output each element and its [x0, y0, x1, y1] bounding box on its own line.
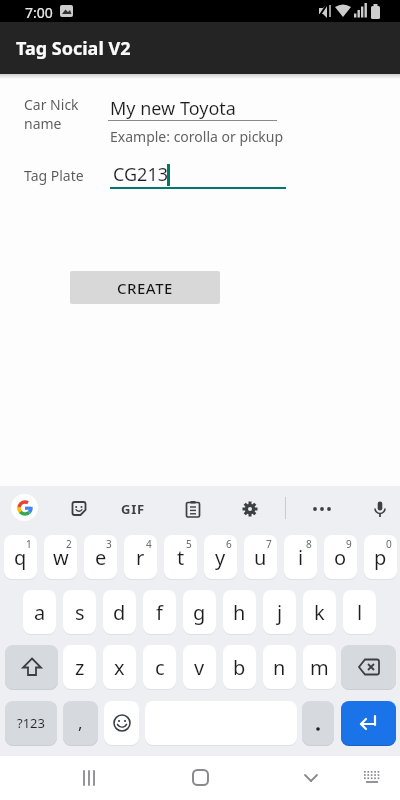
- button[interactable]: [302, 701, 334, 745]
- staticText: u: [254, 544, 267, 571]
- staticText: k: [314, 599, 325, 626]
- button[interactable]: e: [84, 535, 117, 579]
- button[interactable]: c: [143, 645, 176, 689]
- staticText: c: [155, 654, 165, 681]
- staticText: h: [233, 599, 246, 626]
- button[interactable]: [5, 645, 58, 689]
- staticText: CREATE: [117, 278, 173, 298]
- button[interactable]: r: [124, 535, 157, 579]
- button[interactable]: m: [303, 645, 336, 689]
- staticText: 9: [346, 537, 352, 551]
- staticText: b: [233, 654, 246, 681]
- button[interactable]: ?123: [5, 701, 57, 745]
- staticText: v: [194, 654, 205, 681]
- button[interactable]: [341, 701, 396, 745]
- button[interactable]: n: [263, 645, 296, 689]
- button[interactable]: [235, 494, 265, 524]
- button[interactable]: ,: [63, 701, 98, 745]
- staticText: a: [34, 599, 46, 626]
- staticText: y: [215, 544, 226, 571]
- staticText: Example: corolla or pickup: [110, 127, 284, 146]
- staticText: r: [136, 544, 145, 571]
- staticText: CG213: [113, 162, 169, 187]
- button[interactable]: [307, 494, 337, 524]
- staticText: 0: [386, 537, 392, 551]
- button[interactable]: q: [4, 535, 37, 579]
- staticText: 5: [186, 537, 192, 551]
- staticText: Tag Social V2: [16, 36, 131, 61]
- button[interactable]: [356, 763, 386, 793]
- button[interactable]: [341, 645, 396, 689]
- staticText: 3: [106, 537, 112, 551]
- staticText: g: [193, 599, 206, 626]
- button[interactable]: s: [63, 590, 96, 634]
- staticText: ?123: [17, 714, 45, 732]
- button[interactable]: a: [23, 590, 56, 634]
- button[interactable]: [178, 494, 208, 524]
- staticText: e: [95, 544, 107, 571]
- button[interactable]: x: [103, 645, 136, 689]
- button[interactable]: [365, 494, 395, 524]
- button[interactable]: [296, 763, 326, 793]
- staticText: i: [298, 544, 304, 571]
- staticText: q: [14, 544, 27, 571]
- staticText: m: [310, 654, 329, 681]
- staticText: z: [75, 654, 85, 681]
- staticText: 1: [26, 537, 32, 551]
- staticText: Car Nick name: [24, 95, 79, 133]
- button[interactable]: g: [183, 590, 216, 634]
- staticText: Tag Plate: [24, 166, 84, 185]
- staticText: x: [114, 654, 125, 681]
- button[interactable]: CREATE: [70, 271, 220, 304]
- button[interactable]: [104, 701, 139, 745]
- button[interactable]: y: [204, 535, 237, 579]
- button[interactable]: [185, 763, 215, 793]
- button[interactable]: u: [244, 535, 277, 579]
- staticText: GIF: [121, 500, 146, 518]
- button[interactable]: z: [63, 645, 96, 689]
- button[interactable]: f: [143, 590, 176, 634]
- button[interactable]: [64, 494, 94, 524]
- staticText: p: [374, 544, 387, 571]
- button[interactable]: [74, 763, 104, 793]
- button[interactable]: p: [364, 535, 397, 579]
- staticText: j: [277, 599, 283, 626]
- button[interactable]: t: [164, 535, 197, 579]
- staticText: 6: [226, 537, 232, 551]
- staticText: f: [156, 599, 163, 626]
- button[interactable]: l: [343, 590, 376, 634]
- staticText: l: [357, 599, 363, 626]
- button[interactable]: GIF: [118, 494, 148, 524]
- staticText: My new Toyota: [110, 96, 236, 121]
- button[interactable]: k: [303, 590, 336, 634]
- button[interactable]: b: [223, 645, 256, 689]
- button[interactable]: v: [183, 645, 216, 689]
- staticText: o: [334, 544, 347, 571]
- button[interactable]: o: [324, 535, 357, 579]
- staticText: n: [273, 654, 286, 681]
- staticText: 7: [266, 537, 272, 551]
- staticText: d: [113, 599, 126, 626]
- button[interactable]: h: [223, 590, 256, 634]
- staticText: s: [75, 599, 85, 626]
- staticText: 2: [66, 537, 72, 551]
- staticText: 7:00: [25, 3, 53, 22]
- staticText: w: [53, 544, 69, 571]
- staticText: ,: [78, 711, 83, 734]
- button[interactable]: d: [103, 590, 136, 634]
- button[interactable]: j: [263, 590, 296, 634]
- staticText: t: [177, 544, 185, 571]
- button[interactable]: w: [44, 535, 77, 579]
- button[interactable]: i: [284, 535, 317, 579]
- staticText: 4: [146, 537, 152, 551]
- staticText: 8: [306, 537, 312, 551]
- button[interactable]: [11, 494, 38, 521]
